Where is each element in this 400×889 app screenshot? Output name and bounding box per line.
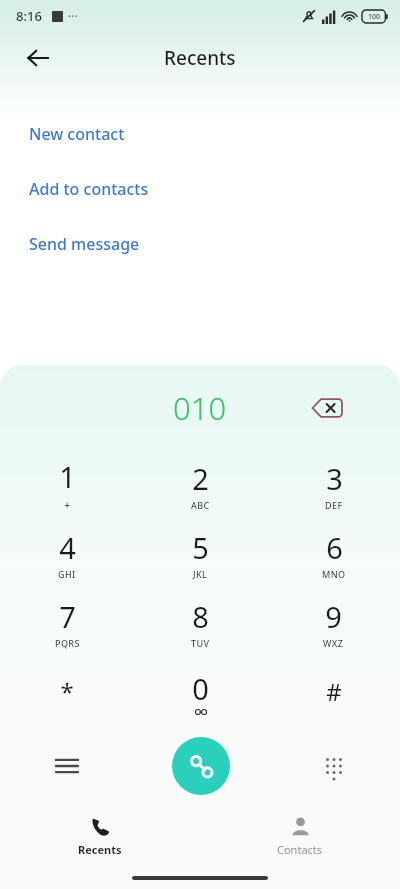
button[interactable]: 4 [0,519,134,588]
staticText: 5 [192,528,209,567]
staticText: 7 [59,597,76,636]
button[interactable]: 0 [134,657,267,726]
staticText: Add to contacts [29,178,149,200]
staticText: ··· [68,8,78,24]
button[interactable]: 5 [134,519,267,588]
button[interactable]: Send message [0,216,400,271]
button[interactable]: * [0,657,134,726]
staticText: Send message [29,233,140,255]
staticText: Contacts [277,842,323,857]
staticText: 8:16 [16,7,42,25]
staticText: 0 [192,669,209,708]
staticText: 1 [59,457,76,496]
button[interactable]: Call [172,737,230,795]
staticText: 100 [368,12,381,22]
button[interactable]: Add to contacts [0,161,400,216]
staticText: GHI [58,568,76,580]
button[interactable]: 2 [134,450,267,519]
button[interactable]: 9 [267,588,400,657]
staticText: 2 [192,459,209,498]
staticText: JKL [193,568,208,580]
button[interactable]: 1 [0,450,134,519]
button[interactable]: 3 [267,450,400,519]
staticText: Recents [78,842,122,857]
button[interactable]: # [267,657,400,726]
staticText: 4 [59,528,76,567]
button[interactable]: 6 [267,519,400,588]
staticText: Recents [164,45,236,71]
button[interactable]: 8 [134,588,267,657]
button[interactable]: 7 [0,588,134,657]
staticText: New contact [29,123,125,145]
staticText: MNO [322,568,346,580]
staticText: 6 [326,528,343,567]
staticText: * [60,675,74,708]
staticText: WXZ [323,637,344,649]
staticText: 010 [173,387,227,429]
staticText: 9 [325,597,342,636]
staticText: TUV [191,637,210,649]
staticText: 3 [326,459,343,498]
staticText: + [64,497,71,512]
staticText: 8 [192,597,209,636]
staticText: # [326,675,342,708]
button[interactable]: Contacts [200,805,400,867]
button[interactable]: New contact [0,106,400,161]
button[interactable]: Back [16,36,60,80]
staticText: ABC [191,499,210,511]
staticText: DEF [325,499,343,511]
button[interactable]: Recents [0,805,200,867]
button[interactable]: Dialpad [310,742,358,790]
button[interactable]: Backspace [304,385,350,431]
staticText: PQRS [55,637,80,649]
button[interactable]: Menu [43,742,91,790]
